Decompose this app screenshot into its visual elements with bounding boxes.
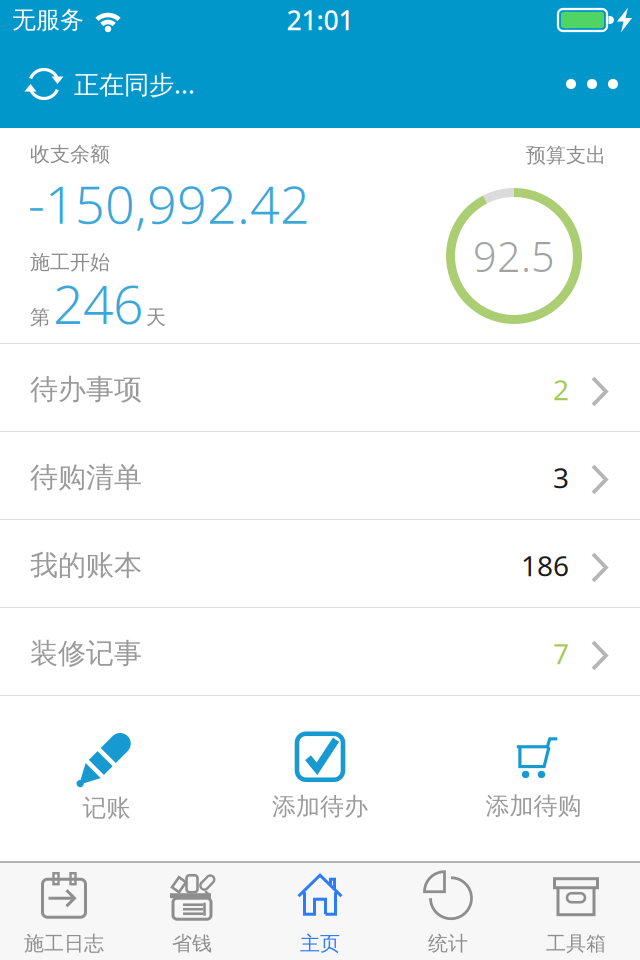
staticText: 装修记事 (30, 636, 142, 671)
staticText: 无服务 (12, 5, 84, 35)
staticText: 统计 (428, 931, 468, 956)
button[interactable]: 省钱 (128, 863, 256, 960)
staticText: 我的账本 (30, 548, 142, 583)
staticText: 主页 (300, 931, 340, 956)
button[interactable]: 记账 (0, 696, 213, 860)
staticText: -150,992.42 (28, 169, 310, 238)
staticText: 天 (146, 305, 166, 330)
staticText: 92.5 (473, 229, 555, 283)
staticText: 工具箱 (546, 931, 606, 956)
button[interactable]: 更多 (566, 63, 618, 105)
staticText: 记账 (82, 793, 130, 823)
button[interactable]: 装修记事 (0, 608, 640, 696)
staticText: 施工开始 (30, 250, 110, 275)
button[interactable]: 添加待办 (213, 696, 427, 860)
button[interactable]: 添加待购 (427, 696, 640, 860)
staticText: 施工日志 (24, 931, 104, 956)
staticText: 省钱 (172, 931, 212, 956)
button[interactable]: 施工日志 (0, 863, 128, 960)
button[interactable]: 主页 (256, 863, 384, 960)
staticText: 待购清单 (30, 460, 142, 495)
staticText: 3 (553, 459, 569, 496)
button[interactable]: 同步 (26, 66, 62, 102)
button[interactable]: 待购清单 (0, 432, 640, 520)
button[interactable]: 统计 (384, 863, 512, 960)
staticText: 添加待办 (272, 792, 368, 821)
staticText: 正在同步... (74, 67, 195, 101)
button[interactable]: 待办事项 (0, 344, 640, 432)
staticText: 待办事项 (30, 372, 142, 407)
staticText: 预算支出 (526, 143, 606, 168)
staticText: 21:01 (286, 2, 353, 38)
staticText: 186 (521, 547, 569, 584)
button[interactable]: 工具箱 (512, 863, 640, 960)
button[interactable]: 我的账本 (0, 520, 640, 608)
staticText: 添加待购 (485, 791, 581, 821)
staticText: 246 (53, 268, 143, 339)
staticText: 收支余额 (30, 142, 110, 167)
staticText: 第 (30, 305, 50, 330)
staticText: 2 (553, 371, 569, 408)
staticText: 7 (553, 635, 569, 672)
